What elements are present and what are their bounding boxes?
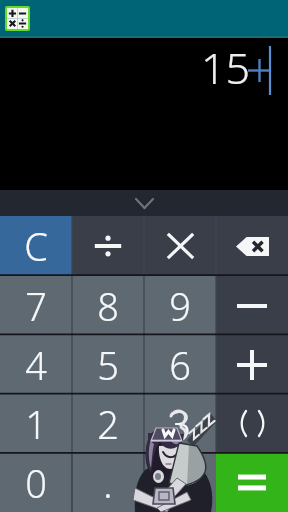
staticText: 9	[169, 280, 191, 332]
button[interactable]: .	[72, 453, 144, 512]
staticText: 6	[169, 339, 191, 391]
button[interactable]: 1	[0, 394, 72, 453]
button[interactable]: Plus	[216, 335, 288, 394]
button[interactable]: Parentheses	[216, 394, 288, 453]
button[interactable]: Equals	[216, 453, 288, 512]
button[interactable]: 5	[72, 335, 144, 394]
staticText: 15	[201, 38, 251, 97]
button[interactable]: 6	[144, 335, 216, 394]
button[interactable]: 2	[72, 394, 144, 453]
button[interactable]: 7	[0, 276, 72, 335]
staticText: 1	[25, 398, 47, 450]
staticText: 0	[25, 457, 47, 509]
button[interactable]: Multiply	[144, 216, 216, 276]
button[interactable]: Minus	[216, 276, 288, 335]
button[interactable]: Collapse history	[0, 190, 288, 216]
staticText: 4	[25, 339, 47, 391]
button[interactable]: 3	[144, 394, 216, 453]
staticText: 5	[97, 339, 119, 391]
button[interactable]: Divide	[72, 216, 144, 276]
button[interactable]: 9	[144, 276, 216, 335]
staticText: 3	[169, 398, 191, 450]
staticText: 2	[97, 398, 119, 450]
staticText: .	[103, 457, 113, 509]
button[interactable]: 0	[0, 453, 72, 512]
staticText: 8	[97, 280, 119, 332]
button[interactable]: C	[0, 216, 72, 276]
staticText: 7	[25, 280, 47, 332]
button[interactable]: 4	[0, 335, 72, 394]
button[interactable]	[144, 453, 216, 512]
button[interactable]: Calculator app icon	[5, 6, 30, 31]
button[interactable]: Backspace	[216, 216, 288, 276]
button[interactable]: 8	[72, 276, 144, 335]
staticText: C	[24, 220, 48, 272]
